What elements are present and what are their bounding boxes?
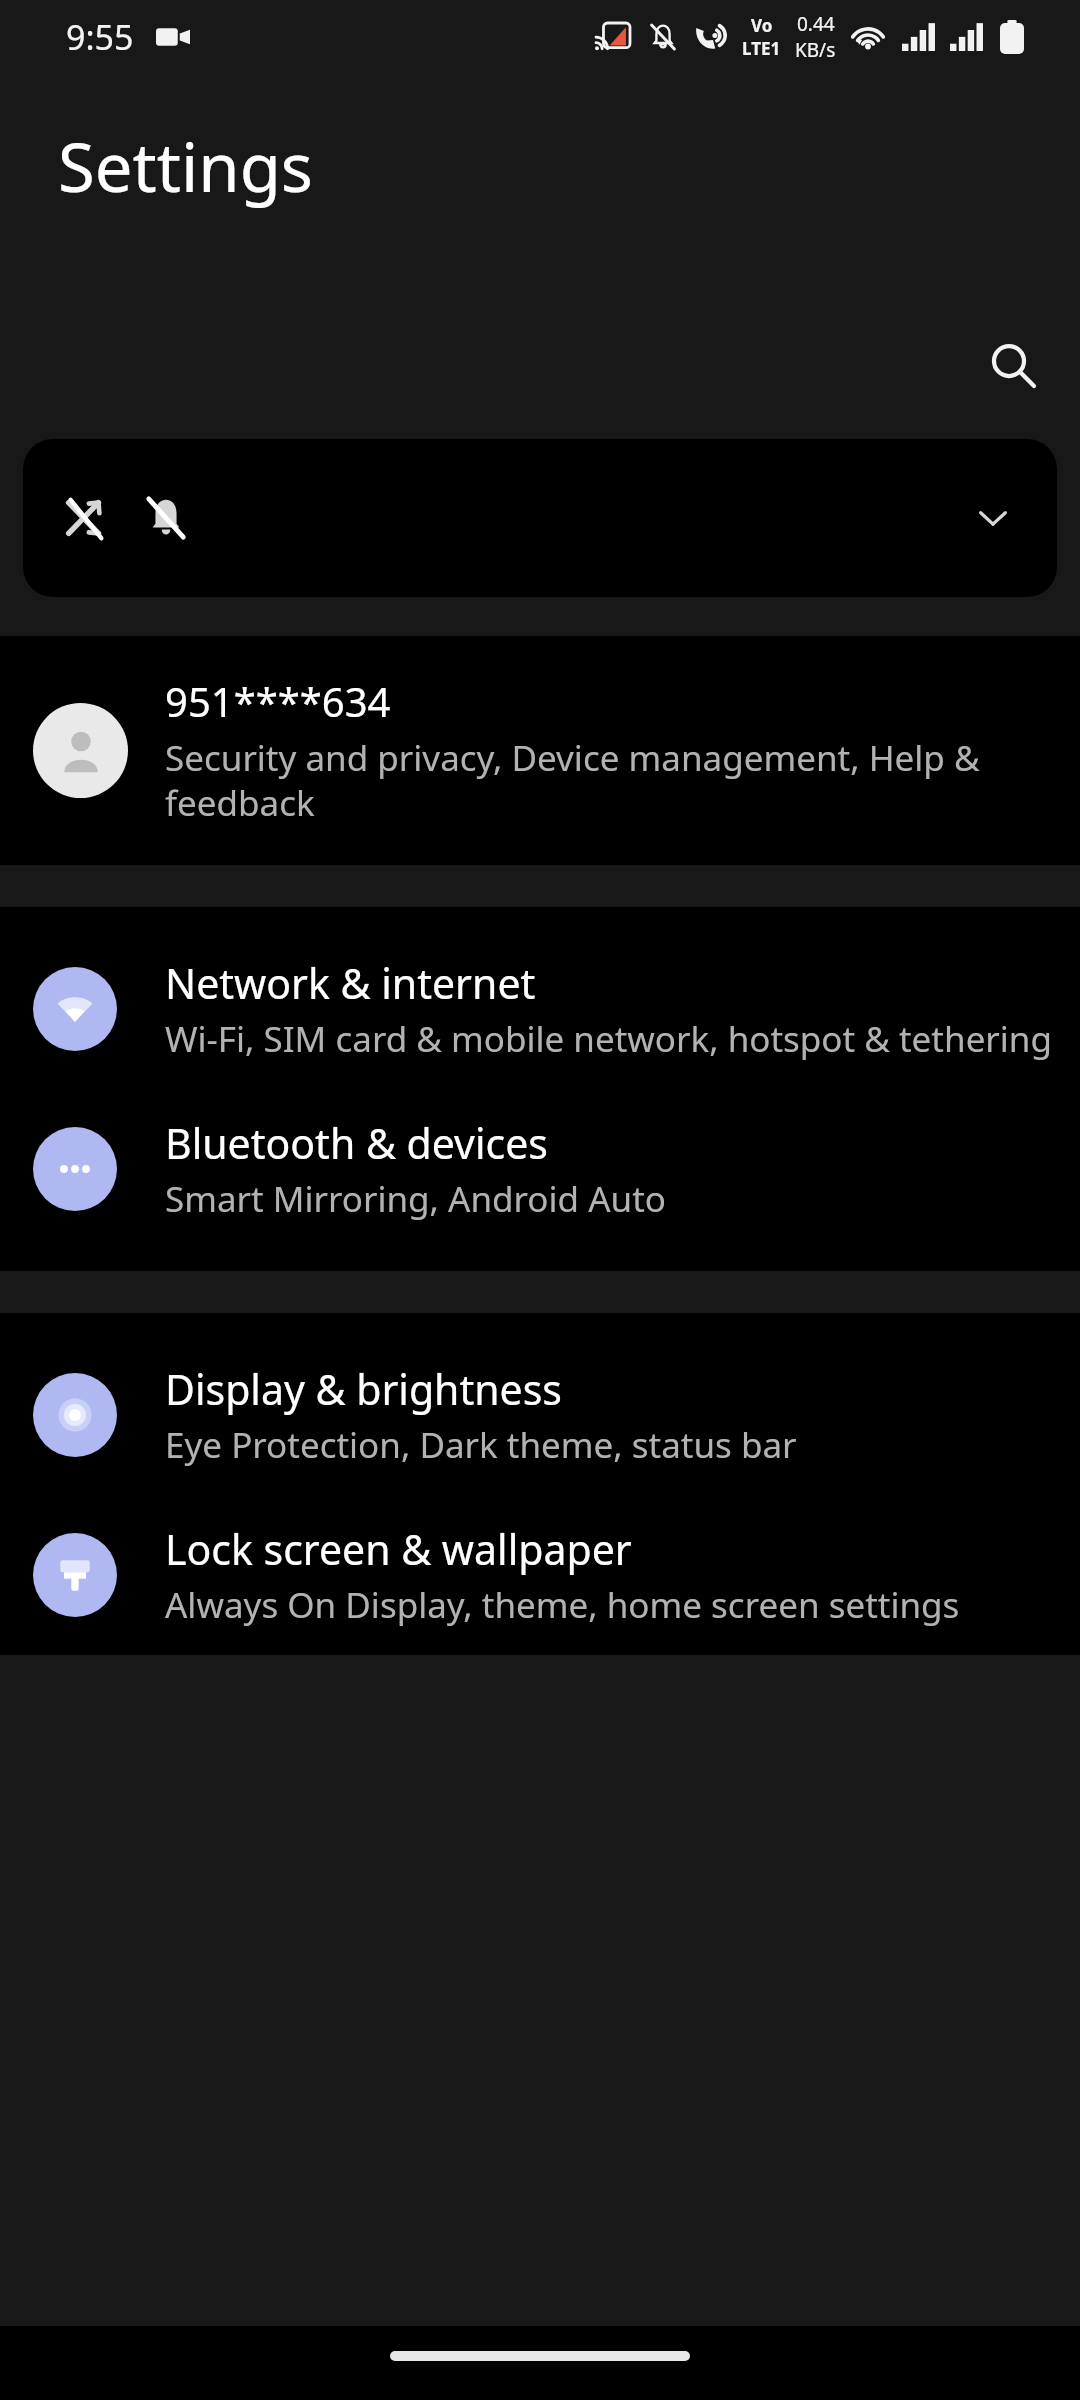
- staticText: Wi-Fi, SIM card & mobile network, hotspo…: [165, 1015, 1053, 1063]
- staticText: Settings: [58, 120, 313, 211]
- other: Expand: [965, 490, 1021, 546]
- staticText: Smart Mirroring, Android Auto: [165, 1175, 666, 1223]
- staticText: LTE1: [742, 37, 781, 60]
- staticText: 9:55: [66, 14, 134, 60]
- staticText: Always On Display, theme, home screen se…: [165, 1581, 960, 1629]
- staticText: Network & internet: [165, 955, 536, 1011]
- staticText: KB/s: [795, 37, 836, 63]
- button[interactable]: Display & brightness: [0, 1335, 1080, 1495]
- button[interactable]: Expand: [23, 439, 1057, 597]
- button[interactable]: Search: [980, 333, 1046, 399]
- button[interactable]: 951****634: [0, 636, 1080, 865]
- button[interactable]: Bluetooth & devices: [0, 1089, 1080, 1249]
- staticText: 951****634: [165, 674, 391, 728]
- staticText: Security and privacy, Device management,…: [165, 734, 1056, 827]
- staticText: 0.44: [797, 11, 835, 37]
- staticText: Display & brightness: [165, 1361, 563, 1417]
- staticText: Bluetooth & devices: [165, 1115, 548, 1171]
- button[interactable]: Lock screen & wallpaper: [0, 1495, 1080, 1655]
- staticText: Vo: [751, 14, 773, 37]
- staticText: Eye Protection, Dark theme, status bar: [165, 1421, 797, 1469]
- staticText: Lock screen & wallpaper: [165, 1521, 632, 1577]
- button[interactable]: Network & internet: [0, 929, 1080, 1089]
